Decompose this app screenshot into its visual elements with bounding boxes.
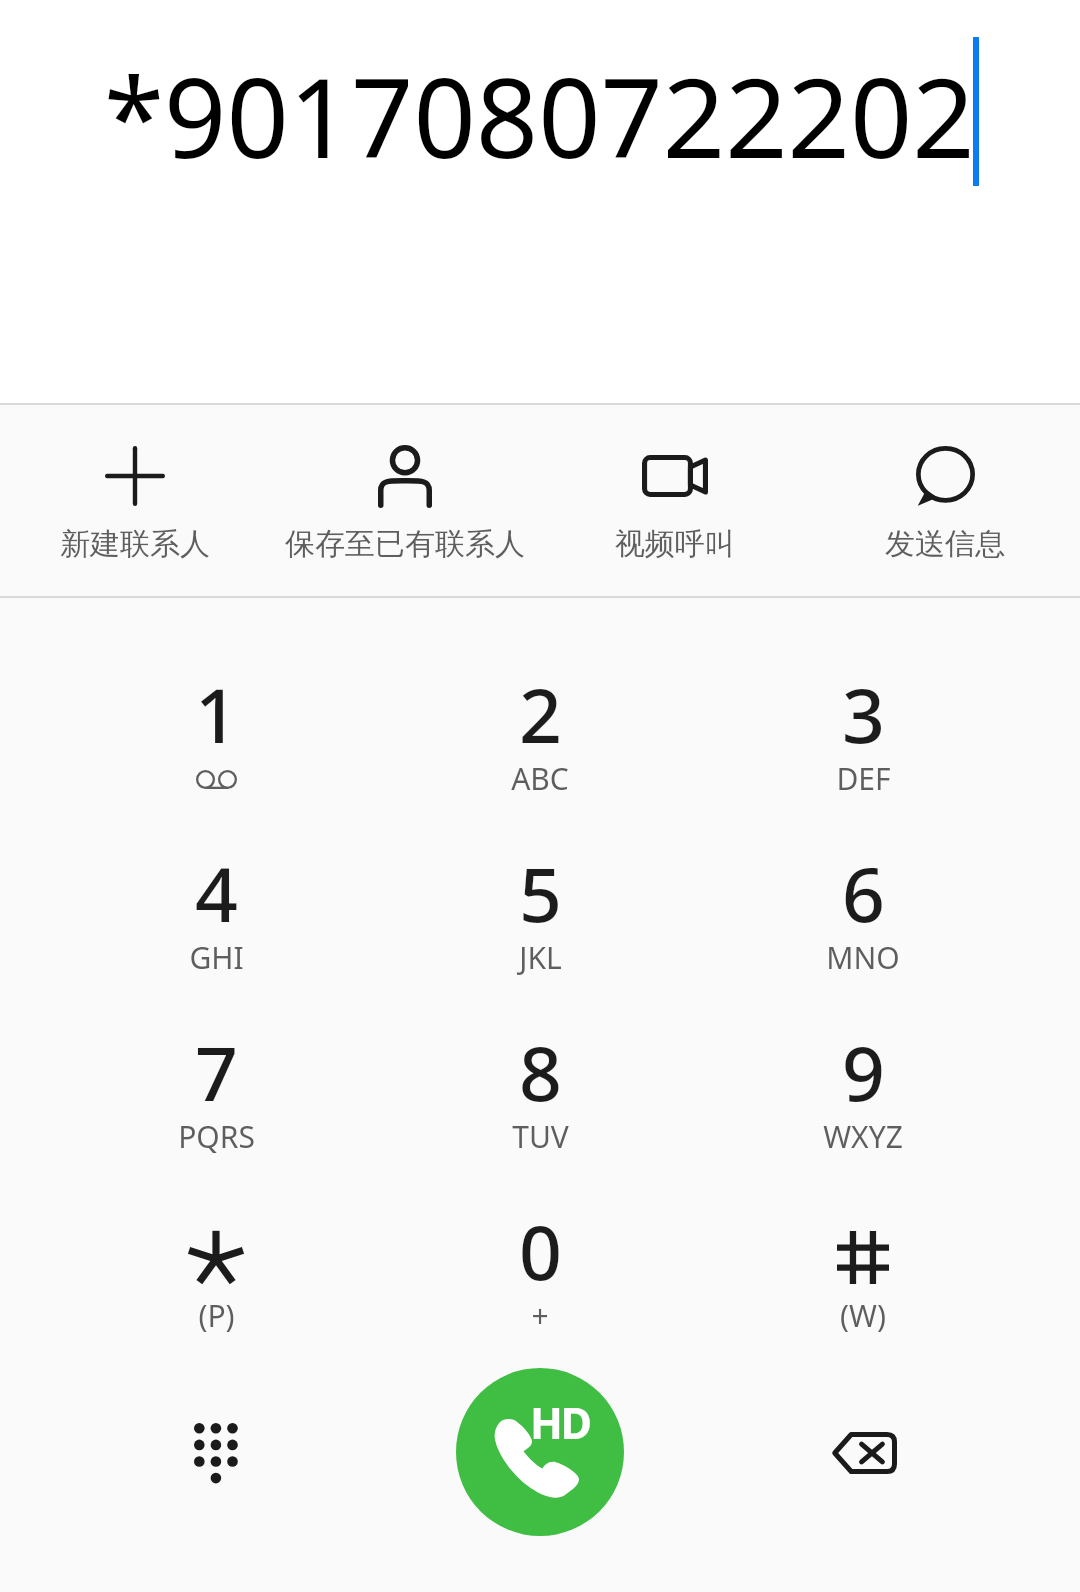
staticText: 发送信息 [885, 525, 1005, 563]
button[interactable]: 8 [378, 988, 702, 1167]
button[interactable]: 7 [54, 988, 378, 1167]
staticText: + [531, 1295, 549, 1336]
staticText: DEF [836, 758, 891, 799]
staticText: 2 [519, 663, 562, 765]
button[interactable]: Call [456, 1368, 624, 1536]
staticText: 9 [842, 1021, 885, 1123]
staticText: 新建联系人 [60, 525, 210, 563]
staticText: JKL [519, 937, 562, 978]
staticText: 3 [842, 663, 885, 765]
staticText: 7 [195, 1021, 238, 1123]
staticText: 5 [519, 842, 562, 944]
button[interactable]: 0 [378, 1167, 702, 1346]
button[interactable]: 发送信息 [810, 405, 1080, 596]
staticText: 8 [519, 1021, 562, 1123]
button[interactable]: 6 [701, 809, 1025, 988]
staticText: 0 [519, 1200, 562, 1302]
button[interactable]: 视频呼叫 [540, 405, 810, 596]
staticText: WXYZ [823, 1116, 903, 1157]
staticText: GHI [189, 937, 244, 978]
staticText: *9017080722202 [104, 41, 975, 189]
button[interactable]: (W) [701, 1167, 1025, 1346]
staticText: 保存至已有联系人 [285, 525, 525, 563]
button[interactable]: 2 [378, 630, 702, 809]
staticText: HD [530, 1393, 590, 1452]
button[interactable]: 新建联系人 [0, 405, 270, 596]
staticText: 视频呼叫 [615, 525, 735, 563]
button[interactable]: 3 [701, 630, 1025, 809]
button[interactable]: 4 [54, 809, 378, 988]
button[interactable]: Backspace [783, 1372, 945, 1534]
button[interactable]: (P) [54, 1167, 378, 1346]
staticText: ABC [511, 758, 569, 799]
staticText: (W) [840, 1295, 886, 1336]
staticText: 6 [842, 842, 885, 944]
staticText: PQRS [178, 1116, 255, 1157]
button[interactable]: Show dialpad [135, 1372, 297, 1534]
button[interactable]: 9 [701, 988, 1025, 1167]
staticText: TUV [512, 1116, 569, 1157]
staticText: (P) [198, 1295, 235, 1336]
button[interactable]: 5 [378, 809, 702, 988]
staticText: 4 [195, 842, 238, 944]
staticText: MNO [826, 937, 900, 978]
staticText: 1 [195, 663, 238, 765]
button[interactable]: 保存至已有联系人 [270, 405, 540, 596]
button[interactable]: 1 [54, 630, 378, 809]
